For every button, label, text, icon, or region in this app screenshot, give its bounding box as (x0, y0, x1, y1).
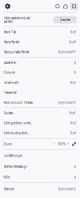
button[interactable]: Anmelden (53, 16, 76, 23)
button[interactable]: Home (61, 0, 69, 12)
staticText: 100% (58, 142, 65, 146)
button[interactable]: Seite durchsuchen… (0, 128, 80, 138)
button[interactable]: Einstellungen (0, 150, 80, 161)
staticText: + (67, 142, 69, 146)
staticText: Strg+T (70, 30, 76, 34)
button[interactable]: Neuer Tab (0, 27, 80, 37)
staticText: Seite durchsuchen… (3, 131, 29, 135)
button[interactable]: Downloads (0, 77, 80, 87)
button[interactable]: Seite speichern unter… (0, 118, 80, 128)
staticText: Neues privates Fenster (3, 50, 29, 54)
button[interactable]: Neues Fenster (0, 37, 80, 47)
staticText: Einstellungen (3, 153, 22, 158)
staticText: Chronik (3, 70, 14, 75)
staticText: Anmelden (60, 18, 70, 21)
staticText: Neuer Tab (3, 30, 16, 34)
staticText: Hilfe (3, 175, 9, 179)
staticText: Strg+Umschalt+A (58, 101, 76, 104)
staticText: Downloads (3, 80, 18, 85)
staticText: Daten synchronisieren und speichern (3, 16, 29, 23)
staticText: Strg+S (70, 121, 76, 125)
staticText: Add-ons und Themes (3, 100, 32, 105)
button[interactable]: Neues privates Fenster (0, 47, 80, 57)
button[interactable]: Weitere Werkzeuge (0, 161, 80, 172)
staticText: Passwörter (3, 90, 16, 95)
staticText: Neues Fenster (3, 40, 19, 44)
staticText: Strg+N (69, 40, 76, 44)
staticText: Strg+Umschalt+P (58, 50, 76, 54)
button[interactable]: Add-ons und Themes (0, 97, 80, 107)
staticText: Seite speichern unter… (3, 121, 32, 125)
staticText: Lesezeichen (3, 60, 16, 65)
button[interactable]: Zoom out (52, 140, 58, 148)
button[interactable]: Full screen (71, 140, 77, 148)
staticText: Zoom (3, 142, 11, 146)
button[interactable]: Chronik (0, 67, 80, 77)
button[interactable]: Tabs (69, 0, 78, 12)
staticText: Weitere Werkzeuge (3, 164, 26, 169)
staticText: Strg+J (70, 81, 76, 84)
staticText: Strg+F (70, 131, 76, 135)
staticText: Beenden (3, 187, 14, 191)
button[interactable]: Account (53, 0, 61, 12)
button[interactable]: Zoom in (65, 140, 71, 148)
button[interactable]: Drucken… (0, 108, 80, 118)
button[interactable]: Passwörter (0, 87, 80, 97)
staticText: Strg+P (69, 111, 76, 115)
staticText: Strg+Umschalt+Q (58, 187, 76, 191)
button[interactable]: Beenden (0, 183, 80, 195)
button[interactable]: Settings (2, 0, 13, 12)
button[interactable]: Lesezeichen (0, 57, 80, 67)
button[interactable]: Hilfe (0, 172, 80, 182)
staticText: Drucken… (3, 111, 15, 115)
staticText: − (54, 142, 56, 146)
